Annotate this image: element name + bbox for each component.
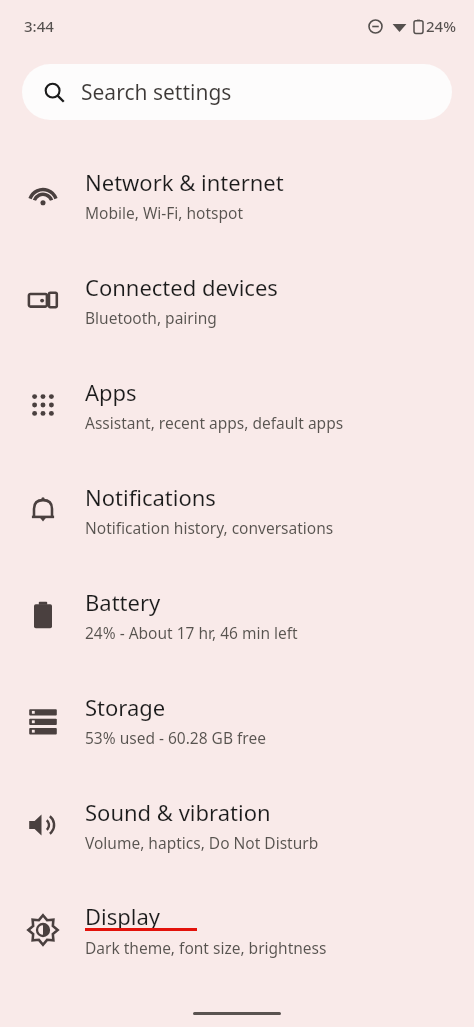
staticText: Apps [85,377,137,407]
staticText: Battery [85,587,161,617]
staticText: Connected devices [85,272,278,302]
button[interactable]: Sound & vibration [0,772,474,877]
staticText: Dark theme, font size, brightness [85,937,327,958]
button[interactable]: Display [0,877,474,982]
staticText: 53% used - 60.28 GB free [85,727,266,748]
button[interactable]: Battery [0,562,474,667]
staticText: Assistant, recent apps, default apps [85,412,344,433]
staticText: Display [85,901,161,931]
button[interactable]: Network & internet [0,142,474,247]
button[interactable]: Notifications [0,457,474,562]
staticText: Network & internet [85,167,284,197]
button[interactable]: Connected devices [0,247,474,352]
button[interactable]: Search settings [22,64,452,120]
button[interactable]: Apps [0,352,474,457]
staticText: Search settings [81,78,232,107]
button[interactable]: Storage [0,667,474,772]
staticText: Storage [85,692,166,722]
staticText: Bluetooth, pairing [85,307,217,328]
staticText: 3:44 [24,16,54,36]
staticText: Volume, haptics, Do Not Disturb [85,832,319,853]
staticText: 24% [426,16,456,36]
staticText: Notifications [85,482,216,512]
staticText: Notification history, conversations [85,517,334,538]
staticText: Mobile, Wi-Fi, hotspot [85,202,244,223]
staticText: Sound & vibration [85,797,271,827]
staticText: 24% - About 17 hr, 46 min left [85,622,298,643]
